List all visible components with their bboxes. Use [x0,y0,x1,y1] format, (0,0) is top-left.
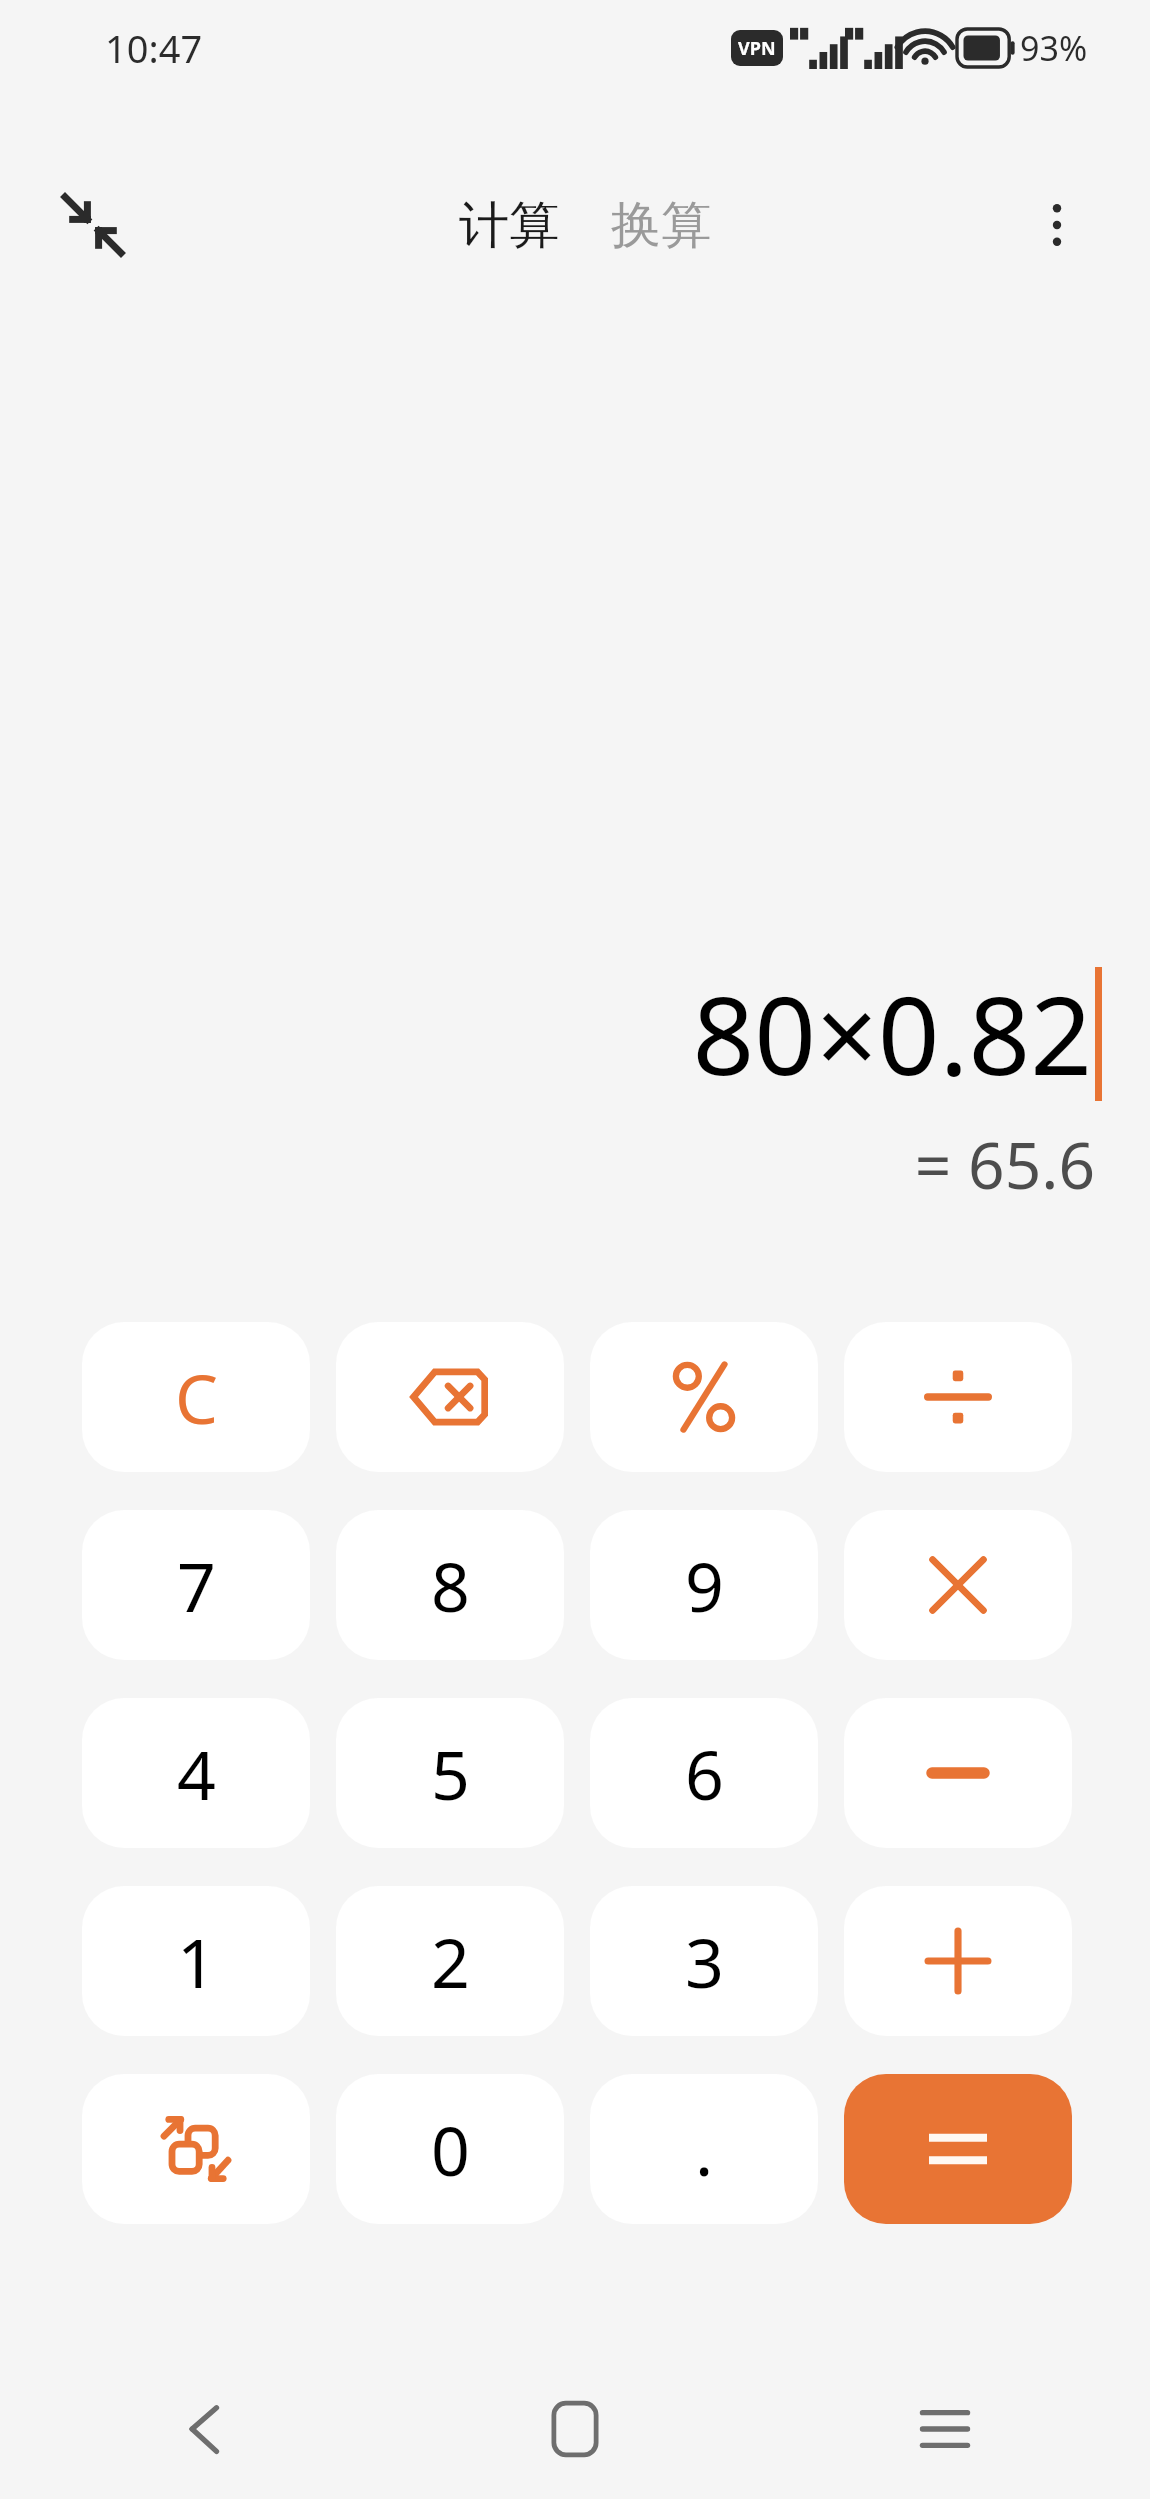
staticText: = 65.6 [914,1121,1095,1208]
button[interactable]: 3 [590,1886,818,2036]
staticText: 93% [1020,25,1088,71]
button[interactable]: Back [150,2379,260,2479]
staticText: 7 [177,1539,216,1632]
staticText: 4 [177,1727,216,1820]
staticText: 8 [431,1539,470,1632]
button[interactable]: Backspace [336,1322,564,1472]
button[interactable]: Convert [82,2074,310,2224]
staticText: 1 [177,1915,216,2008]
staticText: 6 [685,1727,724,1820]
button[interactable]: 0 [336,2074,564,2224]
staticText: 计算 [459,194,559,257]
staticText: 0 [431,2103,470,2196]
button[interactable]: 9 [590,1510,818,1660]
staticText: 10:47 [105,22,203,74]
staticText: 2 [431,1915,470,2008]
staticText: 5 [431,1727,470,1820]
staticText: VPN [738,36,776,61]
button[interactable]: 5 [336,1698,564,1848]
button[interactable]: 2 [336,1886,564,2036]
button[interactable]: Home [520,2379,630,2479]
staticText: C [175,1351,218,1444]
staticText: 换算 [611,194,711,257]
button[interactable]: Divide [844,1322,1072,1472]
button[interactable]: More options [1009,177,1105,273]
staticText: 3 [685,1915,724,2008]
button[interactable]: Recent apps [890,2379,1000,2479]
button[interactable]: 换算 [599,184,723,267]
button[interactable]: Collapse [45,177,141,273]
button[interactable]: Percent [590,1322,818,1472]
button[interactable]: 4 [82,1698,310,1848]
button[interactable]: C [82,1322,310,1472]
button[interactable]: 1 [82,1886,310,2036]
staticText: . [695,2103,714,2196]
button[interactable]: 7 [82,1510,310,1660]
button[interactable]: Multiply [844,1510,1072,1660]
button[interactable]: 8 [336,1510,564,1660]
button[interactable]: . [590,2074,818,2224]
button[interactable]: Equals [844,2074,1072,2224]
button[interactable]: 计算 [447,184,571,267]
button[interactable]: Minus [844,1698,1072,1848]
button[interactable]: Plus [844,1886,1072,2036]
staticText: 9 [685,1539,724,1632]
button[interactable]: 6 [590,1698,818,1848]
staticText: 80×0.82 [692,960,1092,1107]
